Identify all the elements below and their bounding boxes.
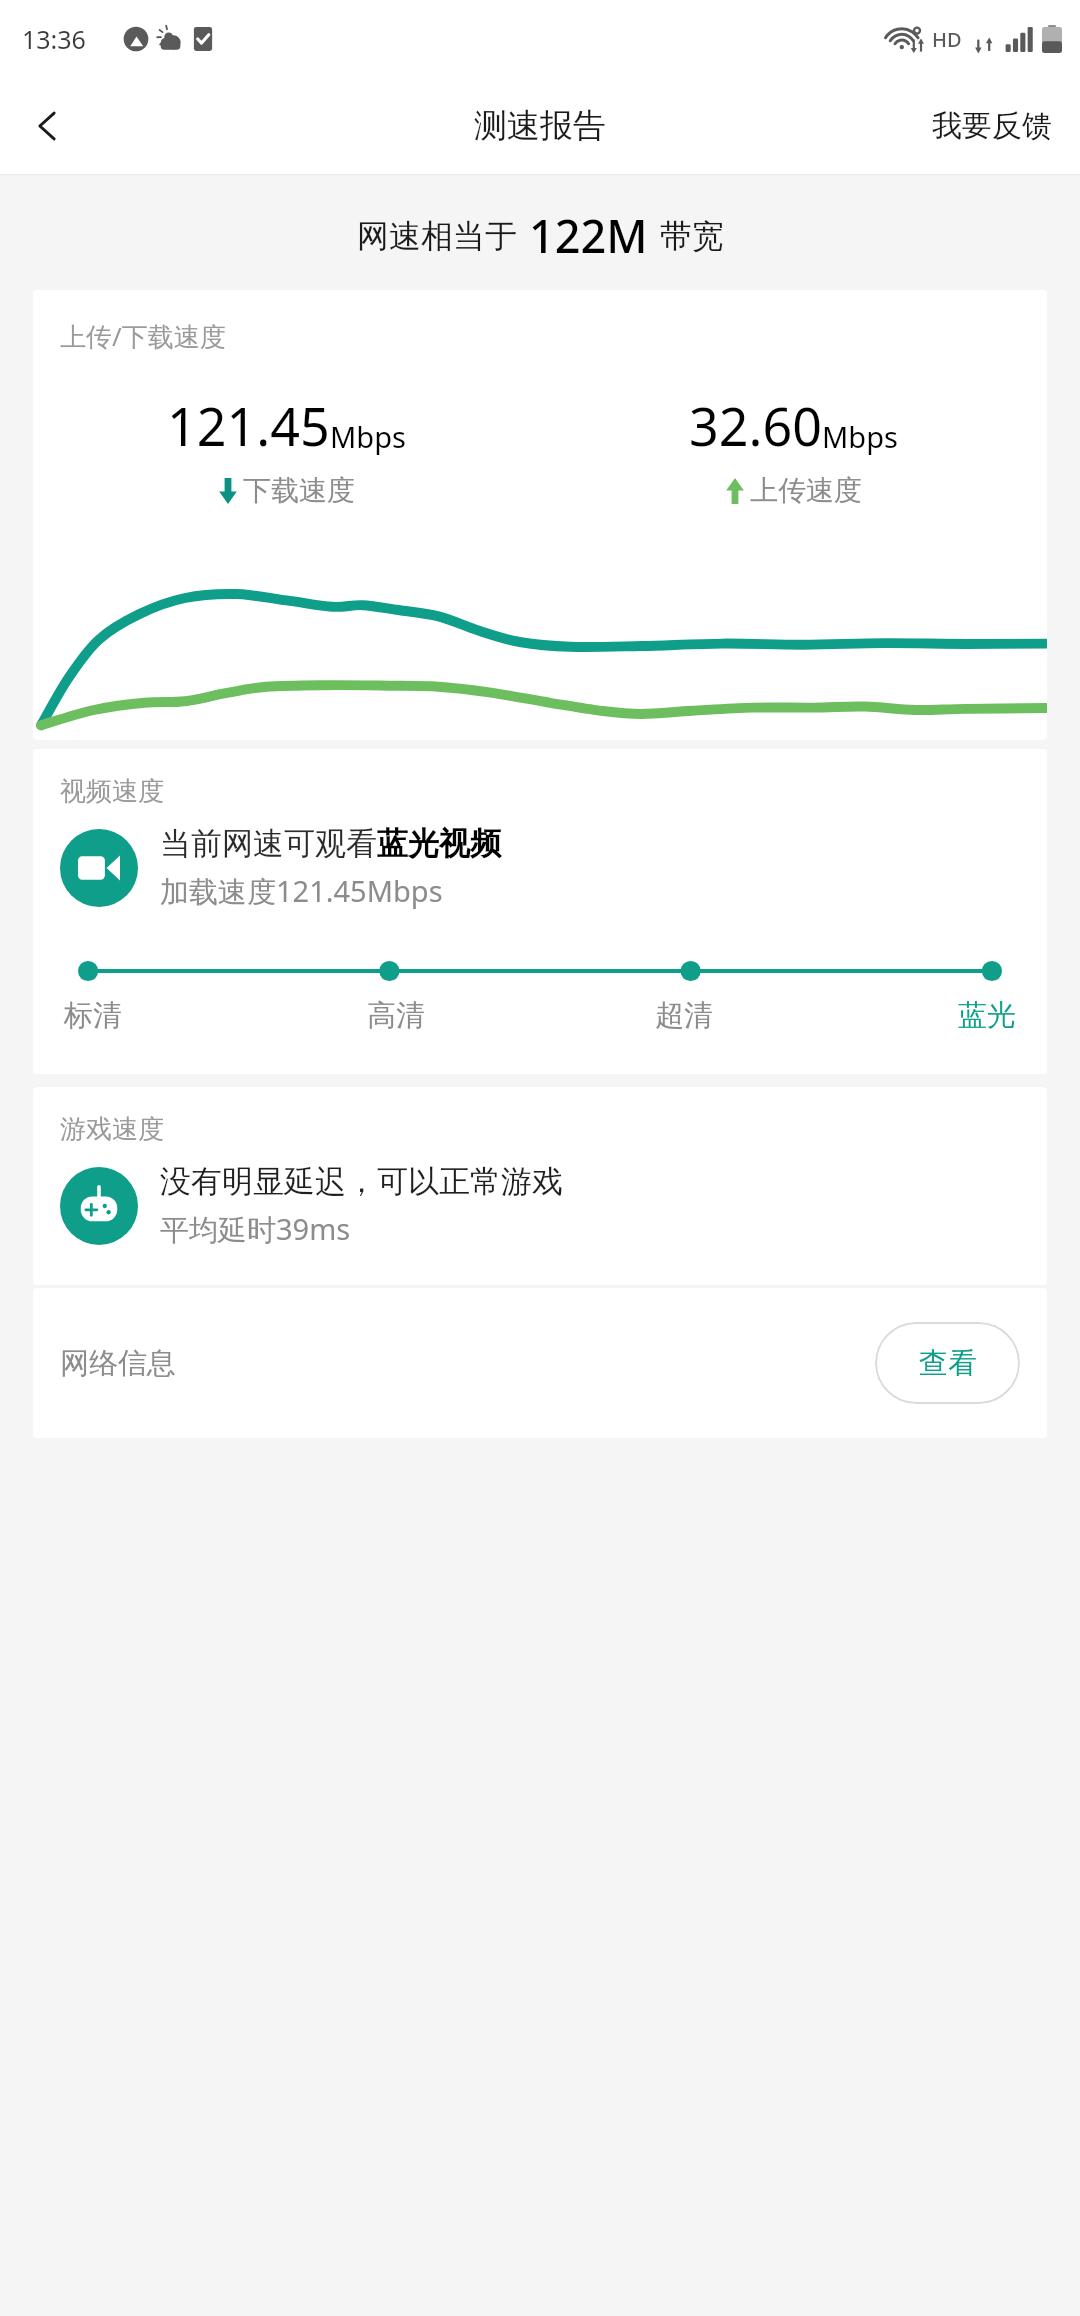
staticText: 高清 [367, 997, 425, 1034]
staticText: 上传速度 [750, 473, 862, 508]
staticText: 平均延时39ms [160, 1209, 351, 1249]
staticText: 超清 [655, 997, 713, 1034]
staticText: 测速报告 [474, 105, 606, 147]
staticText: 游戏速度 [60, 1113, 164, 1146]
staticText: 网速相当于 [357, 216, 517, 256]
staticText: Mbps [822, 417, 898, 456]
staticText: 查看 [919, 1345, 977, 1382]
staticText: 网络信息 [60, 1345, 176, 1382]
staticText: 视频速度 [60, 775, 164, 808]
staticText: 没有明显延迟，可以正常游戏 [160, 1162, 563, 1201]
button[interactable]: 我要反馈 [904, 87, 1080, 165]
staticText: 13:36 [22, 22, 86, 56]
button[interactable]: 查看 [875, 1322, 1020, 1404]
staticText: 121.45 [167, 390, 330, 461]
staticText: 我要反馈 [932, 107, 1052, 145]
button[interactable]: Back [0, 78, 96, 174]
staticText: Mbps [330, 417, 406, 456]
staticText: 蓝光 [958, 997, 1016, 1034]
staticText: 带宽 [660, 216, 724, 256]
staticText: 下载速度 [243, 473, 355, 508]
staticText: 标清 [64, 997, 122, 1034]
staticText: 加载速度121.45Mbps [160, 871, 443, 911]
staticText: 122M [529, 205, 648, 266]
staticText: 32.60 [689, 390, 822, 461]
staticText: HD [932, 26, 962, 53]
staticText: 当前网速可观看蓝光视频 [160, 824, 501, 863]
staticText: 上传/下载速度 [60, 318, 226, 354]
